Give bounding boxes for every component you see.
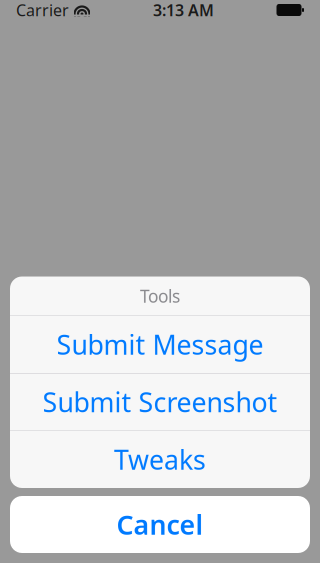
button[interactable]: Tweaks	[10, 431, 310, 488]
staticText: Submit Screenshot	[42, 384, 277, 420]
button[interactable]: Submit Screenshot	[10, 373, 310, 430]
button[interactable]: Submit Message	[10, 316, 310, 373]
staticText: Submit Message	[56, 327, 263, 362]
staticText: Tweaks	[114, 442, 206, 477]
button[interactable]: Cancel	[10, 496, 310, 553]
staticText: 3:13 AM	[153, 0, 214, 21]
staticText: Cancel	[116, 507, 203, 542]
staticText: Carrier	[16, 0, 69, 21]
staticText: Tools	[140, 284, 180, 307]
